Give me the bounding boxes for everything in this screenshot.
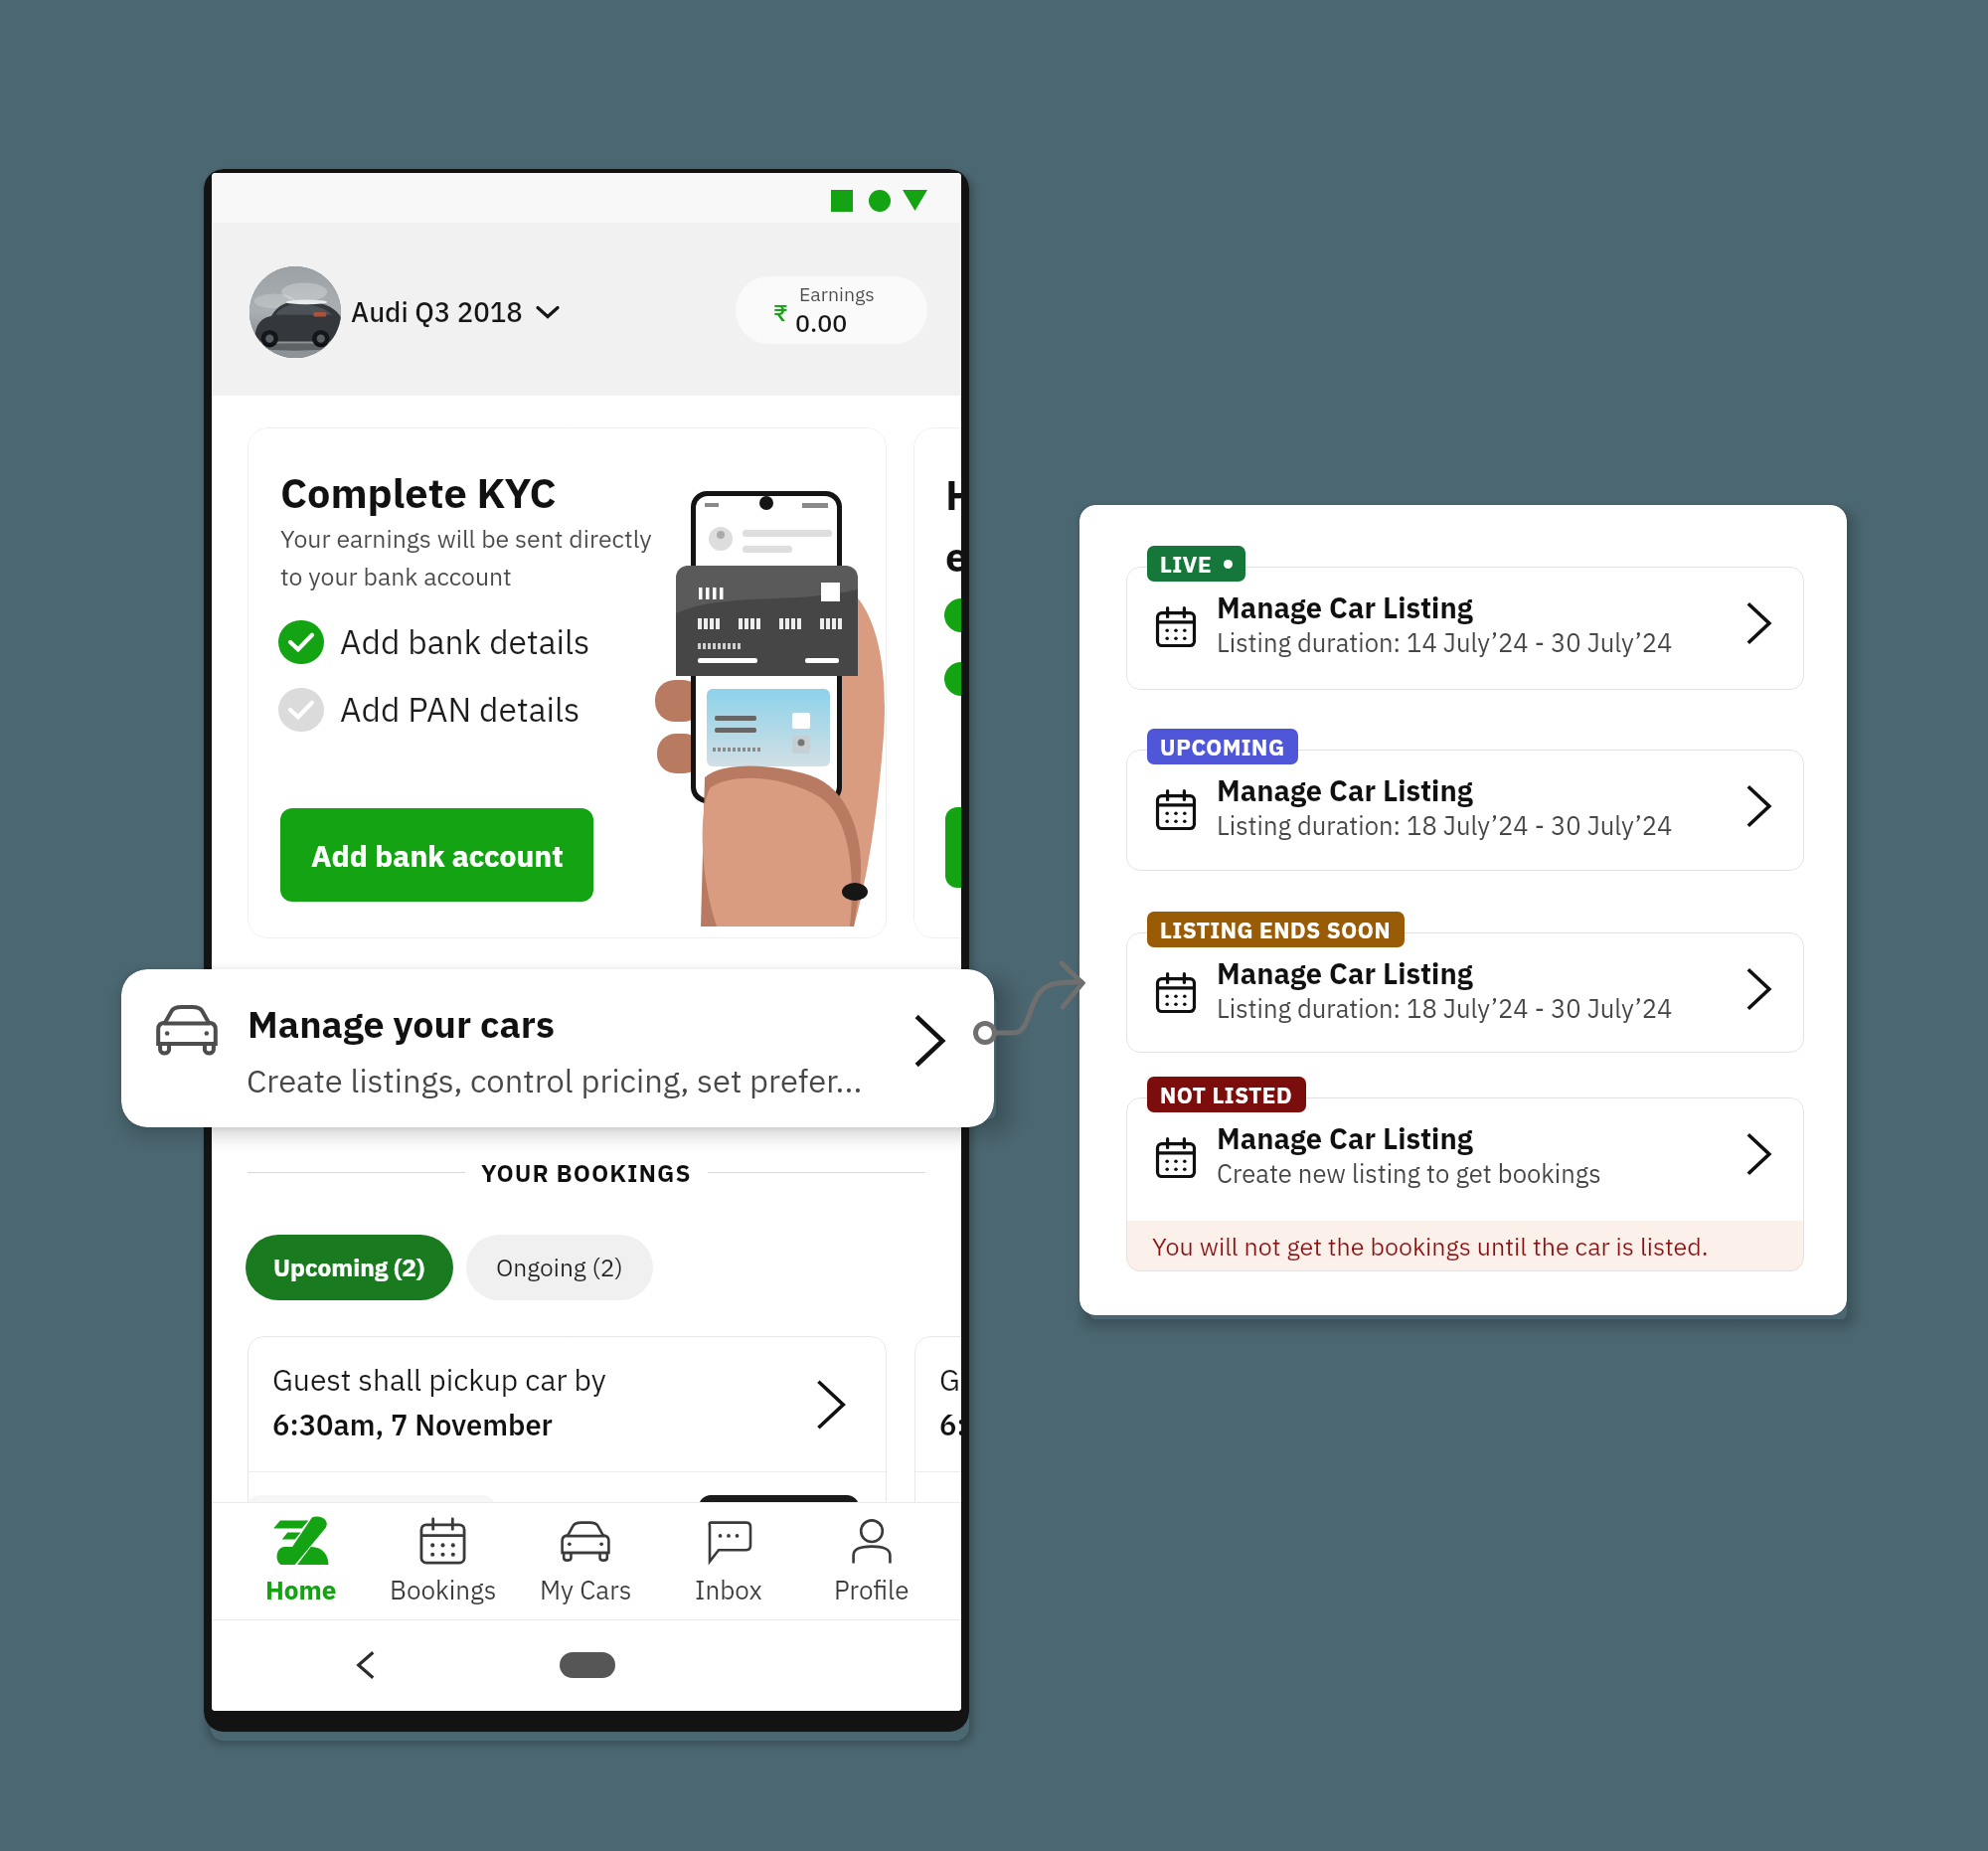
button[interactable]: Bookings (372, 1502, 514, 1619)
staticText: Manage your cars (248, 999, 804, 1051)
button[interactable]: Manage Car Listing (1126, 1097, 1804, 1271)
staticText: Guest shall pickup car by (272, 1360, 749, 1404)
staticText: Create new listing to get bookings (1217, 1157, 1601, 1190)
button[interactable]: Next booking (914, 1336, 961, 1525)
button[interactable]: Manage Car Listing (1126, 932, 1804, 1053)
button[interactable]: Home gesture (540, 1634, 635, 1696)
staticText: 0.00 (795, 306, 924, 340)
staticText: Listing duration: 18 July’24 - 30 July’2… (1217, 809, 1673, 842)
staticText: Your earnings will be sent directly to y… (280, 523, 678, 602)
staticText: Manage Car Listing (1217, 771, 1473, 809)
button[interactable]: Audi Q3 2018 (249, 264, 617, 360)
button[interactable]: Upcoming (2) (246, 1235, 453, 1300)
staticText: YOUR BOOKINGS (481, 1157, 692, 1187)
staticText: Add bank details (340, 620, 590, 664)
staticText: My Cars (540, 1573, 632, 1606)
button[interactable]: Host your car and earn (913, 427, 961, 938)
staticText: Audi Q3 2018 (351, 294, 523, 330)
other: Change car (537, 305, 559, 319)
staticText: 6: (939, 1406, 961, 1449)
button[interactable]: Home (230, 1502, 372, 1619)
staticText: Create listings, control pricing, set pr… (247, 1059, 942, 1106)
staticText: Manage Car Listing (1217, 1119, 1473, 1157)
staticText: Add bank account (311, 836, 564, 875)
staticText: LISTING ENDS SOON (1160, 916, 1392, 944)
staticText: Profile (834, 1573, 910, 1606)
button[interactable]: ₹ (736, 276, 927, 344)
staticText: NOT LISTED (1160, 1081, 1293, 1109)
button[interactable]: Complete KYC (248, 427, 887, 938)
button[interactable]: Inbox (657, 1502, 800, 1619)
button[interactable] (121, 969, 994, 1127)
staticText: Add PAN details (340, 688, 580, 732)
button[interactable]: My Cars (514, 1502, 657, 1619)
staticText: Ongoing (2) (496, 1252, 623, 1283)
button[interactable]: Add bank account (280, 808, 593, 902)
staticText: Bookings (390, 1573, 497, 1606)
staticText: Upcoming (2) (273, 1252, 425, 1283)
staticText: G (939, 1360, 961, 1404)
button[interactable]: Manage Car Listing (1126, 750, 1804, 871)
button[interactable]: Back (331, 1634, 401, 1696)
staticText: Earnings (799, 281, 927, 307)
staticText: Inbox (695, 1573, 762, 1606)
staticText: You will not get the bookings until the … (1152, 1230, 1709, 1262)
staticText: Home (265, 1573, 337, 1606)
staticText: e (945, 529, 961, 581)
button[interactable]: Ongoing (2) (466, 1235, 653, 1300)
button[interactable]: Profile (800, 1502, 943, 1619)
staticText: Listing duration: 18 July’24 - 30 July’2… (1217, 992, 1673, 1025)
staticText: H (945, 467, 961, 519)
staticText: Manage Car Listing (1217, 589, 1473, 626)
staticText: Complete KYC (280, 465, 678, 517)
staticText: ₹ (773, 297, 803, 329)
button[interactable]: Manage Car Listing (1126, 567, 1804, 690)
staticText: Listing duration: 14 July’24 - 30 July’2… (1217, 626, 1673, 659)
staticText: LIVE (1160, 550, 1213, 579)
button[interactable]: Guest shall pickup car by (248, 1336, 887, 1525)
staticText: 6:30am, 7 November (272, 1406, 749, 1449)
staticText: Manage Car Listing (1217, 954, 1473, 992)
staticText: UPCOMING (1160, 733, 1285, 761)
